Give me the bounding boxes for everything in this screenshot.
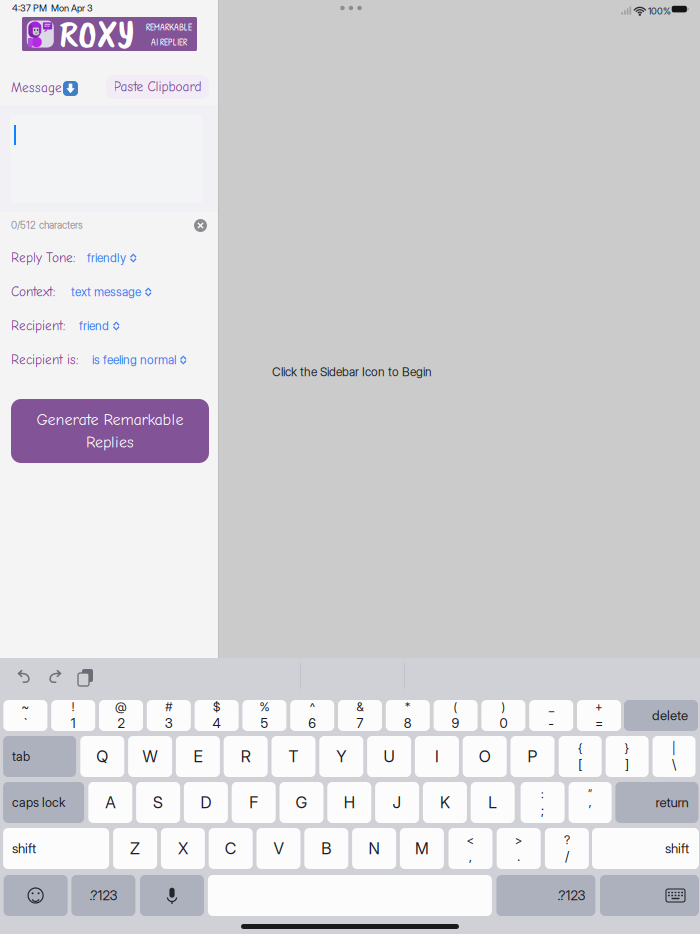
button[interactable]: W bbox=[128, 736, 172, 777]
staticText: ” bbox=[588, 787, 592, 801]
button[interactable]: caps lock bbox=[3, 782, 84, 823]
button[interactable]: Emoji bbox=[4, 875, 68, 916]
button[interactable]: H bbox=[327, 782, 371, 823]
button[interactable]: G bbox=[279, 782, 323, 823]
staticText: Message bbox=[11, 80, 62, 96]
staticText: 2 bbox=[117, 715, 124, 731]
button[interactable]: | bbox=[652, 736, 695, 777]
button[interactable]: T bbox=[271, 736, 315, 777]
staticText: A bbox=[105, 793, 115, 812]
button[interactable]: > bbox=[497, 828, 541, 869]
button[interactable]: ) bbox=[481, 700, 525, 731]
staticText: ^ bbox=[310, 700, 315, 714]
staticText: text message bbox=[71, 285, 141, 299]
button[interactable]: K bbox=[423, 782, 467, 823]
button[interactable]: } bbox=[606, 736, 649, 777]
button[interactable]: text message bbox=[71, 284, 181, 300]
button[interactable]: ~ bbox=[3, 700, 47, 731]
button[interactable]: @ bbox=[99, 700, 143, 731]
button[interactable]: return bbox=[615, 782, 698, 823]
button[interactable]: Paste Clipboard bbox=[106, 75, 209, 99]
button[interactable]: U bbox=[367, 736, 411, 777]
button[interactable]: I bbox=[415, 736, 459, 777]
button[interactable]: L bbox=[471, 782, 515, 823]
button[interactable]: ^ bbox=[290, 700, 334, 731]
staticText: 4:37 PM bbox=[12, 2, 47, 14]
button[interactable]: Z bbox=[113, 828, 157, 869]
button[interactable]: Q bbox=[80, 736, 124, 777]
button[interactable]: Y bbox=[319, 736, 363, 777]
staticText: 5 bbox=[260, 715, 268, 731]
button[interactable]: X bbox=[161, 828, 205, 869]
staticText: M bbox=[415, 839, 429, 858]
button[interactable]: S bbox=[136, 782, 180, 823]
button[interactable]: ” bbox=[569, 782, 612, 823]
staticText: 100% bbox=[648, 5, 671, 17]
staticText: 4 bbox=[213, 715, 221, 731]
button[interactable]: O bbox=[463, 736, 507, 777]
staticText: _ bbox=[549, 700, 554, 714]
button[interactable]: Dictate bbox=[140, 875, 204, 916]
button[interactable]: Redo bbox=[48, 670, 61, 683]
button[interactable]: F bbox=[232, 782, 276, 823]
button[interactable]: Hide keyboard bbox=[600, 875, 699, 916]
button[interactable]: ! bbox=[51, 700, 95, 731]
button[interactable]: : bbox=[521, 782, 565, 823]
button[interactable]: _ bbox=[529, 700, 573, 731]
button[interactable]: ( bbox=[434, 700, 478, 731]
button[interactable]: V bbox=[256, 828, 300, 869]
button[interactable]: R bbox=[224, 736, 268, 777]
button[interactable]: { bbox=[559, 736, 602, 777]
staticText: > bbox=[515, 833, 523, 847]
button[interactable]: shift bbox=[3, 828, 109, 869]
button[interactable]: + bbox=[577, 700, 621, 731]
staticText: * bbox=[405, 700, 411, 714]
button[interactable]: < bbox=[448, 828, 492, 869]
button[interactable]: # bbox=[147, 700, 191, 731]
button[interactable]: delete bbox=[624, 700, 698, 731]
button[interactable]: .?123 bbox=[496, 875, 595, 916]
staticText: [ bbox=[578, 756, 582, 772]
button[interactable]: Paste bbox=[78, 669, 93, 686]
button[interactable]: C bbox=[209, 828, 253, 869]
button[interactable]: A bbox=[88, 782, 132, 823]
button[interactable]: Clear text bbox=[194, 219, 207, 232]
button[interactable]: D bbox=[184, 782, 228, 823]
button[interactable]: E bbox=[176, 736, 220, 777]
staticText: B bbox=[321, 839, 331, 858]
button[interactable]: * bbox=[386, 700, 430, 731]
button[interactable]: B bbox=[304, 828, 348, 869]
staticText: shift bbox=[665, 840, 689, 856]
staticText: # bbox=[165, 700, 172, 714]
button[interactable]: M bbox=[400, 828, 444, 869]
staticText: R bbox=[241, 747, 251, 766]
staticText: 9 bbox=[452, 715, 460, 731]
staticText: REMARKABLE bbox=[146, 20, 192, 33]
button[interactable]: $ bbox=[195, 700, 239, 731]
button[interactable]: friendly bbox=[87, 250, 197, 266]
staticText: - bbox=[548, 715, 554, 731]
staticText: Context: bbox=[11, 284, 55, 300]
button[interactable]: is feeling normal bbox=[92, 352, 202, 368]
button[interactable]: .?123 bbox=[71, 875, 135, 916]
staticText: N bbox=[369, 839, 380, 858]
staticText: 1 bbox=[71, 715, 76, 731]
button[interactable]: Undo bbox=[17, 670, 30, 683]
staticText: C bbox=[225, 839, 237, 858]
button[interactable]: N bbox=[352, 828, 396, 869]
button[interactable]: & bbox=[338, 700, 382, 731]
button[interactable]: P bbox=[510, 736, 554, 777]
button[interactable]: Generate Remarkable bbox=[11, 399, 209, 463]
button[interactable]: ? bbox=[545, 828, 589, 869]
button[interactable]: tab bbox=[3, 736, 76, 777]
button[interactable]: J bbox=[375, 782, 419, 823]
staticText: \ bbox=[672, 756, 676, 772]
staticText: H bbox=[344, 793, 355, 812]
staticText: Q bbox=[96, 747, 108, 766]
button[interactable]: shift bbox=[592, 828, 699, 869]
staticText: 0 bbox=[499, 715, 507, 731]
staticText: caps lock bbox=[12, 795, 65, 810]
button[interactable]: % bbox=[242, 700, 286, 731]
button[interactable]: friend bbox=[79, 318, 189, 334]
